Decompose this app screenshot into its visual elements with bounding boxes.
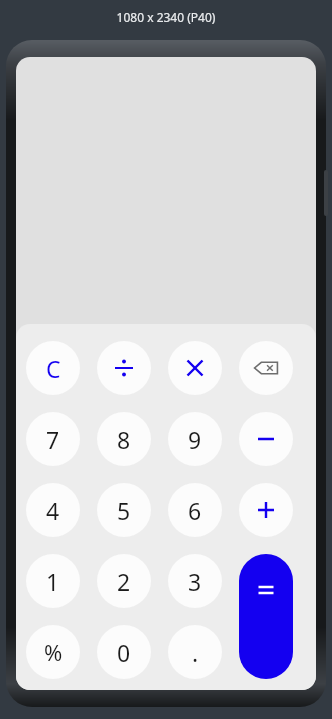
staticText: 6 — [188, 495, 202, 526]
staticText: 5 — [117, 495, 131, 526]
button[interactable]: 7 — [26, 412, 80, 466]
staticText: 1080 x 2340 (P40) — [0, 9, 332, 25]
button[interactable]: 1 — [26, 554, 80, 608]
button[interactable]: 6 — [168, 483, 222, 537]
staticText: 4 — [46, 495, 60, 526]
button[interactable]: Backspace — [239, 341, 293, 395]
button[interactable]: % — [26, 625, 80, 679]
button[interactable]: C — [26, 341, 80, 395]
staticText: % — [44, 637, 63, 667]
button[interactable] — [168, 341, 222, 395]
button[interactable]: 3 — [168, 554, 222, 608]
button[interactable]: 0 — [97, 625, 151, 679]
button[interactable]: 8 — [97, 412, 151, 466]
staticText: C — [46, 353, 61, 384]
button[interactable]: 9 — [168, 412, 222, 466]
button[interactable]: . — [168, 625, 222, 679]
button[interactable]: Equals — [239, 554, 293, 679]
button[interactable]: 4 — [26, 483, 80, 537]
button[interactable]: 5 — [97, 483, 151, 537]
staticText: 3 — [188, 566, 202, 597]
staticText: 9 — [188, 424, 202, 455]
button[interactable] — [239, 483, 293, 537]
staticText: 7 — [46, 424, 60, 455]
staticText: . — [192, 637, 199, 668]
staticText: 8 — [117, 424, 131, 455]
staticText: 1 — [46, 566, 60, 597]
staticText: 0 — [117, 637, 131, 668]
button[interactable] — [97, 341, 151, 395]
staticText: 2 — [117, 566, 131, 597]
button[interactable]: 2 — [97, 554, 151, 608]
button[interactable] — [239, 412, 293, 466]
